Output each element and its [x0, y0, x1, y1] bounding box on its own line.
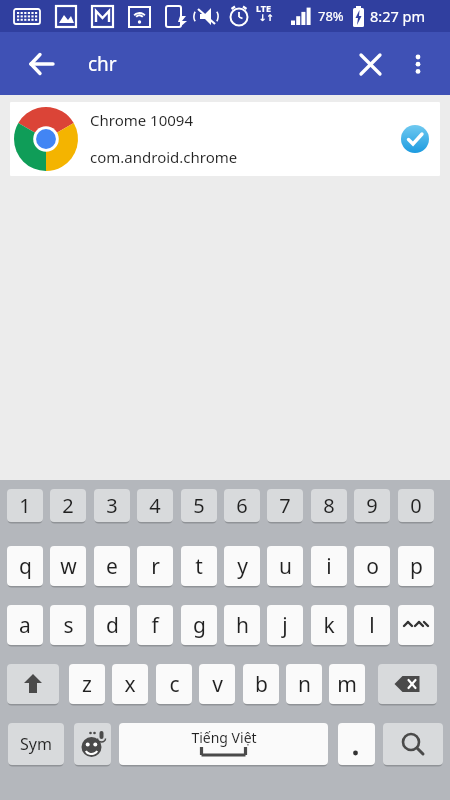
- button[interactable]: v: [199, 664, 235, 704]
- staticText: w: [60, 552, 77, 581]
- staticText: Sym: [20, 733, 52, 755]
- button[interactable]: Chrome 10094: [10, 102, 440, 176]
- button[interactable]: Clear: [344, 38, 396, 90]
- button[interactable]: m: [329, 664, 365, 704]
- button[interactable]: g: [181, 605, 217, 645]
- button[interactable]: 7: [267, 489, 303, 522]
- button[interactable]: j: [267, 605, 303, 645]
- button[interactable]: w: [50, 546, 86, 586]
- button[interactable]: z: [69, 664, 105, 704]
- staticText: 2: [62, 492, 74, 519]
- staticText: h: [236, 611, 249, 640]
- button[interactable]: c: [156, 664, 192, 704]
- staticText: z: [82, 670, 92, 699]
- button[interactable]: f: [137, 605, 173, 645]
- staticText: u: [279, 552, 292, 581]
- staticText: j: [282, 611, 288, 640]
- button[interactable]: accent: [398, 605, 434, 645]
- staticText: i: [326, 552, 332, 581]
- staticText: b: [255, 670, 268, 699]
- button[interactable]: shift: [7, 664, 59, 704]
- button[interactable]: r: [137, 546, 173, 586]
- button[interactable]: 6: [224, 489, 260, 522]
- button[interactable]: b: [243, 664, 279, 704]
- staticText: 9: [366, 492, 378, 519]
- staticText: c: [169, 670, 180, 699]
- button[interactable]: 8: [311, 489, 347, 522]
- button[interactable]: 1: [7, 489, 43, 522]
- staticText: chr: [88, 51, 117, 77]
- button[interactable]: x: [112, 664, 148, 704]
- staticText: g: [193, 611, 206, 640]
- button[interactable]: Back: [14, 36, 70, 92]
- button[interactable]: h: [224, 605, 260, 645]
- staticText: t: [195, 552, 203, 581]
- staticText: 6: [236, 492, 248, 519]
- staticText: d: [106, 611, 119, 640]
- button[interactable]: Tiếng Việt: [119, 723, 328, 765]
- button[interactable]: o: [354, 546, 390, 586]
- button[interactable]: period: [338, 723, 375, 765]
- staticText: y: [237, 552, 248, 581]
- staticText: x: [124, 670, 136, 699]
- staticText: 78%: [318, 7, 344, 25]
- staticText: s: [63, 611, 74, 640]
- button[interactable]: e: [94, 546, 130, 586]
- button[interactable]: search: [383, 723, 443, 765]
- staticText: 5: [193, 492, 205, 519]
- staticText: 8:27 pm: [370, 6, 426, 26]
- staticText: e: [106, 552, 118, 581]
- button[interactable]: s: [50, 605, 86, 645]
- staticText: v: [212, 670, 223, 699]
- button[interactable]: y: [224, 546, 260, 586]
- button[interactable]: l: [354, 605, 390, 645]
- button[interactable]: u: [267, 546, 303, 586]
- staticText: LTE: [256, 2, 272, 14]
- staticText: k: [323, 611, 335, 640]
- staticText: Chrome 10094: [90, 110, 194, 130]
- staticText: a: [19, 611, 31, 640]
- button[interactable]: 3: [94, 489, 130, 522]
- button[interactable]: t: [181, 546, 217, 586]
- staticText: ↓↑: [259, 13, 275, 23]
- button[interactable]: Sym: [8, 723, 64, 765]
- button[interactable]: n: [286, 664, 322, 704]
- button[interactable]: d: [94, 605, 130, 645]
- staticText: 8: [323, 492, 335, 519]
- staticText: Tiếng Việt: [191, 728, 257, 747]
- staticText: 1: [19, 492, 31, 519]
- staticText: 7: [279, 492, 291, 519]
- staticText: f: [151, 611, 159, 640]
- staticText: 0: [410, 492, 422, 519]
- button[interactable]: 9: [354, 489, 390, 522]
- button[interactable]: 0: [398, 489, 434, 522]
- staticText: r: [151, 552, 160, 581]
- button[interactable]: k: [311, 605, 347, 645]
- button[interactable]: 2: [50, 489, 86, 522]
- button[interactable]: q: [7, 546, 43, 586]
- staticText: n: [298, 670, 311, 699]
- button[interactable]: More options: [394, 40, 442, 88]
- button[interactable]: 5: [181, 489, 217, 522]
- staticText: l: [369, 611, 375, 640]
- staticText: com.android.chrome: [90, 147, 238, 167]
- staticText: 4: [149, 492, 161, 519]
- staticText: o: [366, 552, 379, 581]
- button[interactable]: emoji: [74, 723, 111, 765]
- button[interactable]: p: [398, 546, 434, 586]
- staticText: 3: [106, 492, 118, 519]
- staticText: p: [410, 552, 423, 581]
- staticText: q: [19, 552, 32, 581]
- button[interactable]: i: [311, 546, 347, 586]
- button[interactable]: backspace: [378, 664, 437, 704]
- staticText: m: [337, 670, 357, 699]
- button[interactable]: a: [7, 605, 43, 645]
- button[interactable]: 4: [137, 489, 173, 522]
